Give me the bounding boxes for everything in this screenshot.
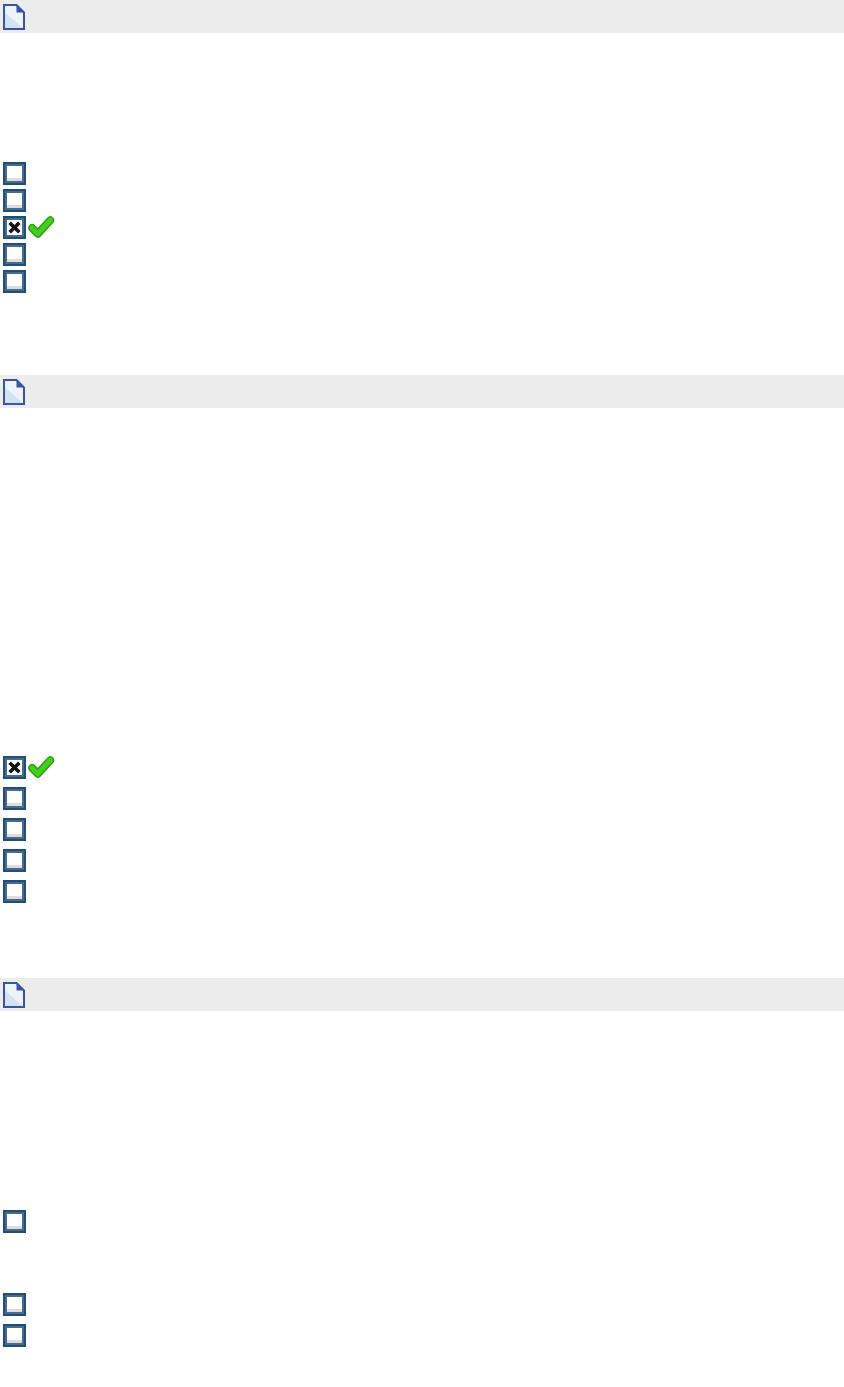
button[interactable]: Checkbox bbox=[4, 163, 25, 184]
other: Document bbox=[3, 379, 25, 405]
button[interactable]: Document bbox=[0, 0, 844, 33]
other: Selected bbox=[31, 217, 51, 238]
button[interactable]: Checkbox bbox=[4, 244, 25, 265]
button[interactable]: Checkbox bbox=[4, 271, 25, 292]
button[interactable]: Checkbox bbox=[4, 819, 25, 840]
button[interactable]: Document bbox=[0, 375, 844, 408]
button[interactable]: Checkbox bbox=[4, 1325, 25, 1346]
button[interactable]: Checkbox bbox=[4, 190, 25, 211]
other: Selected bbox=[31, 757, 51, 778]
button[interactable]: Checkbox bbox=[4, 1294, 25, 1315]
button[interactable]: Checkbox bbox=[4, 1211, 25, 1232]
button[interactable]: Checked checkbox bbox=[4, 757, 51, 778]
button[interactable]: Checkbox bbox=[4, 881, 25, 902]
other: Checked checkbox bbox=[4, 217, 25, 238]
button[interactable]: Checked checkbox bbox=[4, 217, 51, 238]
other: Checked checkbox bbox=[4, 757, 25, 778]
button[interactable]: Checkbox bbox=[4, 850, 25, 871]
other: Document bbox=[3, 4, 25, 30]
other: Document bbox=[3, 982, 25, 1008]
button[interactable]: Checkbox bbox=[4, 788, 25, 809]
button[interactable]: Document bbox=[0, 978, 844, 1011]
